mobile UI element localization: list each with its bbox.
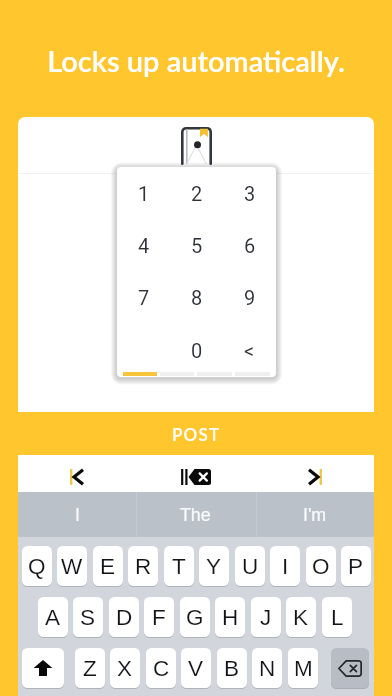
button[interactable]: G	[180, 597, 210, 637]
button[interactable]: S	[73, 597, 103, 637]
staticText: D	[116, 605, 133, 630]
button[interactable]	[117, 324, 170, 377]
button[interactable]: J	[251, 597, 281, 637]
staticText: K	[293, 605, 309, 630]
staticText: 9	[244, 286, 256, 309]
button[interactable]: Backspace	[331, 648, 369, 688]
button[interactable]: Z	[75, 648, 105, 688]
button[interactable]: <	[223, 324, 276, 377]
button[interactable]: E	[93, 546, 123, 586]
staticText: L	[331, 605, 344, 630]
staticText: Q	[28, 554, 46, 579]
button[interactable]: A	[38, 597, 68, 637]
button[interactable]: P	[341, 546, 371, 586]
staticText: 8	[191, 286, 203, 309]
staticText: P	[348, 554, 364, 579]
staticText: G	[186, 605, 204, 630]
staticText: T	[172, 554, 186, 579]
button[interactable]: POST	[18, 412, 374, 455]
button[interactable]: Y	[199, 546, 229, 586]
staticText: A	[45, 605, 61, 630]
button[interactable]: T	[164, 546, 194, 586]
staticText: O	[312, 554, 330, 579]
staticText: R	[135, 554, 152, 579]
button[interactable]: C	[146, 648, 176, 688]
staticText: 3	[244, 182, 256, 205]
staticText: M	[294, 656, 313, 681]
button[interactable]: Q	[22, 546, 52, 586]
button[interactable]: 4	[117, 219, 170, 271]
button[interactable]: F	[144, 597, 174, 637]
staticText: J	[260, 605, 272, 630]
staticText: Y	[206, 554, 222, 579]
staticText: 4	[138, 234, 150, 257]
staticText: POST	[172, 424, 221, 444]
button[interactable]: 5	[170, 219, 223, 271]
staticText: 7	[138, 286, 150, 309]
button[interactable]: L	[322, 597, 352, 637]
button[interactable]: M	[288, 648, 318, 688]
button[interactable]: I	[270, 546, 300, 586]
staticText: W	[61, 554, 83, 579]
button[interactable]: 6	[223, 219, 276, 271]
staticText: 6	[244, 234, 256, 257]
staticText: V	[188, 656, 204, 681]
button[interactable]: Previous	[18, 458, 136, 495]
button[interactable]: 7	[117, 271, 170, 324]
button[interactable]: 9	[223, 271, 276, 324]
button[interactable]: 0	[170, 324, 223, 377]
staticText: 2	[191, 182, 203, 205]
button[interactable]: 2	[170, 167, 223, 219]
staticText: E	[100, 554, 116, 579]
staticText: F	[152, 605, 166, 630]
staticText: <	[244, 339, 255, 362]
staticText: Locks up automatically.	[0, 43, 392, 78]
staticText: C	[153, 656, 170, 681]
staticText: S	[80, 605, 96, 630]
staticText: U	[242, 554, 259, 579]
button[interactable]: Delete	[136, 458, 255, 495]
staticText: Z	[83, 656, 97, 681]
button[interactable]: Next	[255, 458, 374, 495]
button[interactable]: I	[18, 492, 136, 537]
staticText: N	[259, 656, 276, 681]
button[interactable]: O	[306, 546, 336, 586]
button[interactable]: V	[181, 648, 211, 688]
staticText: 1	[138, 182, 150, 205]
button[interactable]: N	[252, 648, 282, 688]
button[interactable]: W	[57, 546, 87, 586]
button[interactable]: 3	[223, 167, 276, 219]
button[interactable]: U	[235, 546, 265, 586]
button[interactable]: 1	[117, 167, 170, 219]
staticText: I	[282, 554, 289, 579]
button[interactable]: 8	[170, 271, 223, 324]
button[interactable]: H	[215, 597, 245, 637]
staticText: 5	[191, 234, 203, 257]
staticText: I'm	[303, 505, 327, 525]
button[interactable]: B	[217, 648, 247, 688]
button[interactable]: K	[286, 597, 316, 637]
staticText: X	[117, 656, 133, 681]
button[interactable]: I'm	[255, 492, 374, 537]
button[interactable]: Shift	[22, 648, 64, 688]
staticText: I	[75, 505, 80, 525]
staticText: 0	[191, 339, 203, 362]
staticText: The	[180, 505, 211, 525]
button[interactable]: R	[128, 546, 158, 586]
button[interactable]: X	[110, 648, 140, 688]
button[interactable]: D	[109, 597, 139, 637]
staticText: H	[222, 605, 239, 630]
button[interactable]: The	[136, 492, 255, 537]
staticText: B	[224, 656, 240, 681]
